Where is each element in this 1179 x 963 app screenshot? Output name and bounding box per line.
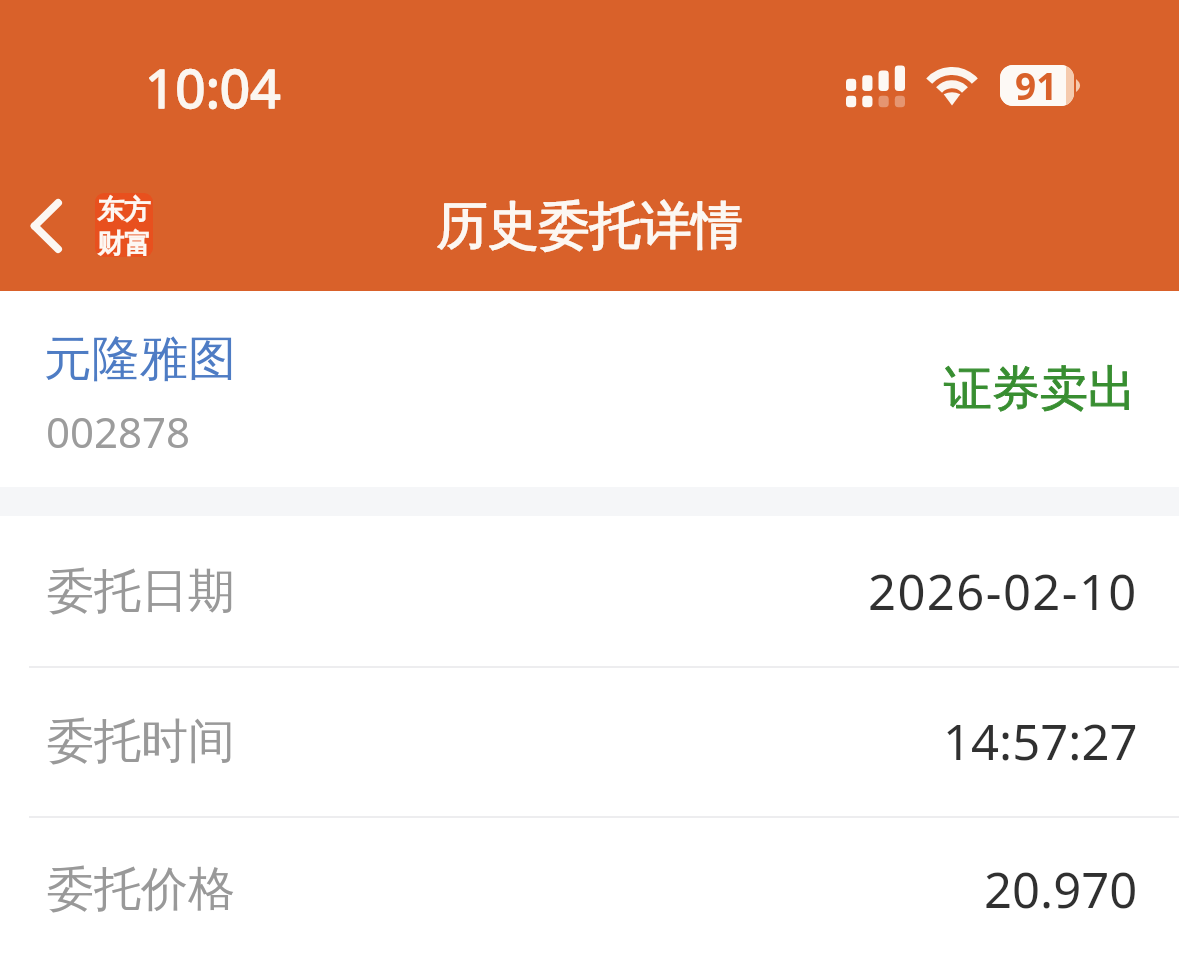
staticText: 002878 [46,403,191,460]
staticText: 10:04 [145,51,281,123]
staticText: 东方 [97,193,151,227]
staticText: 证券卖出 [944,359,1136,419]
staticText: 14:57:27 [943,708,1138,775]
staticText: 委托价格 [47,860,235,919]
other: Battery 91 percent [1000,65,1074,106]
staticText: 10:04 [145,51,281,123]
button[interactable]: 委托价格 [0,816,1179,963]
button[interactable]: 元隆雅图 [0,291,1179,487]
staticText: 财富 [97,227,151,257]
staticText: 2026-02-10 [868,558,1138,625]
button[interactable]: Back [1,181,91,271]
button[interactable]: 委托日期 [0,516,1179,666]
staticText: 证券卖出 [944,359,1136,419]
other: Mobile signal [846,63,905,107]
staticText: 20.970 [984,856,1138,923]
staticText: 委托日期 [47,562,235,621]
other: Wi-Fi [926,63,978,109]
staticText: 历史委托详情 [0,194,1179,258]
staticText: 委托时间 [47,712,235,771]
staticText: 元隆雅图 [44,329,236,389]
button[interactable]: East Money [95,193,153,257]
button[interactable]: 委托时间 [0,666,1179,816]
staticText: 91 [1015,65,1058,101]
staticText: 历史委托详情 [0,194,1179,258]
